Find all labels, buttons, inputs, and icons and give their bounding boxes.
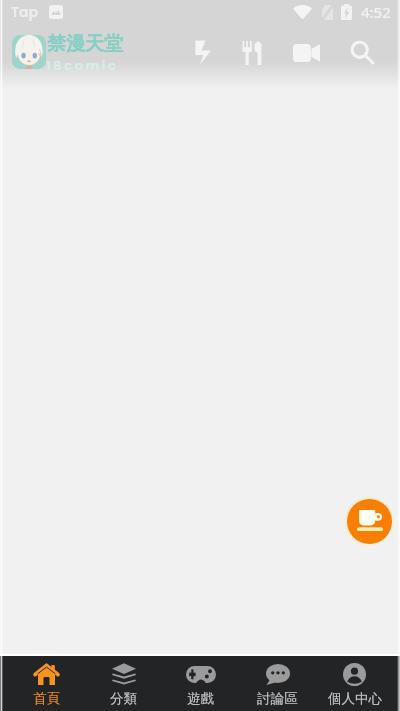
staticText: 4:52 xyxy=(361,2,391,22)
button[interactable]: 個人中心 xyxy=(316,656,393,711)
staticText: 18comic xyxy=(46,56,119,74)
staticText: 分類 xyxy=(110,690,137,707)
button[interactable]: 遊戲 xyxy=(162,656,239,711)
button[interactable]: 分類 xyxy=(85,656,162,711)
button[interactable]: Flash xyxy=(183,34,222,71)
staticText: 遊戲 xyxy=(187,690,214,707)
button[interactable]: Coffee xyxy=(345,497,393,545)
button[interactable]: Search xyxy=(343,34,382,71)
button[interactable]: 首頁 xyxy=(7,656,85,711)
staticText: 討論區 xyxy=(257,690,298,707)
button[interactable]: Food xyxy=(232,34,271,71)
button[interactable]: Video xyxy=(287,34,326,71)
staticText: 禁漫天堂 xyxy=(47,32,123,56)
staticText: 個人中心 xyxy=(328,690,382,707)
staticText: Tap xyxy=(11,2,39,22)
staticText: 首頁 xyxy=(33,690,60,707)
button[interactable]: 討論區 xyxy=(239,656,316,711)
